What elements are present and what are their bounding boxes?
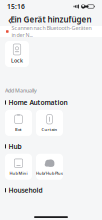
staticText: Household — [8, 186, 42, 195]
button[interactable]: Back — [3, 12, 17, 26]
staticText: Curtain — [41, 127, 57, 132]
staticText: ‹ — [8, 11, 12, 27]
button[interactable]: Bot — [5, 110, 32, 136]
staticText: Home Automation — [8, 98, 67, 107]
button[interactable]: Hub/Hub Plus — [36, 154, 63, 180]
staticText: Add Manually — [5, 87, 37, 94]
button[interactable]: Curtain — [36, 110, 63, 136]
button[interactable]: Hub Mini — [5, 154, 32, 180]
staticText: 15:16 — [7, 2, 25, 11]
button[interactable]: Lock — [5, 41, 29, 67]
staticText: Ein Gerät hinzufügen — [10, 14, 91, 25]
staticText: Bot — [15, 127, 22, 132]
staticText: Hub Mini — [9, 171, 27, 176]
staticText: Hub/Hub Plus — [36, 171, 63, 176]
staticText: Lock — [11, 57, 23, 64]
staticText: Hub — [8, 142, 21, 151]
staticText: Scannen nach Bluetooth-Geräten in der N.… — [12, 24, 92, 39]
